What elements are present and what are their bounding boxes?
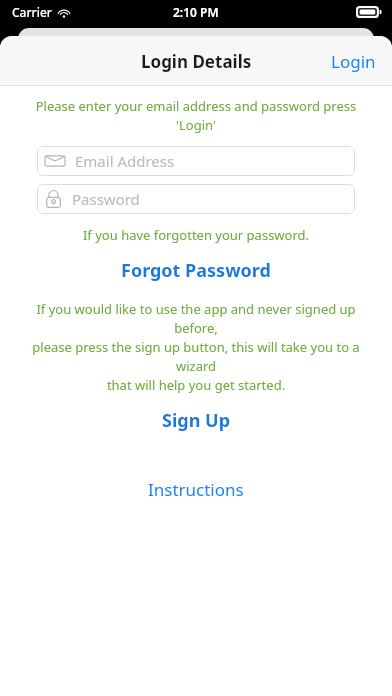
staticText: 2:10 PM <box>173 4 219 20</box>
staticText: Password <box>72 189 140 209</box>
button[interactable]: Login <box>315 40 392 83</box>
staticText: Forgot Password <box>121 258 271 283</box>
staticText: Please enter your email address and pass… <box>14 97 378 134</box>
staticText: Carrier <box>12 4 52 20</box>
button[interactable]: Password <box>37 184 355 214</box>
staticText: Login <box>331 50 376 73</box>
staticText: If you have forgotten your password. <box>14 226 378 244</box>
button[interactable]: Instructions <box>130 475 262 504</box>
button[interactable]: Email Address <box>37 146 355 176</box>
staticText: Sign Up <box>162 408 231 433</box>
button[interactable]: Forgot Password <box>103 255 289 286</box>
staticText: Instructions <box>148 478 244 501</box>
staticText: Email Address <box>75 151 175 171</box>
button[interactable]: Sign Up <box>144 405 249 436</box>
staticText: Login Details <box>141 50 252 73</box>
staticText: If you would like to use the app and nev… <box>14 300 378 394</box>
